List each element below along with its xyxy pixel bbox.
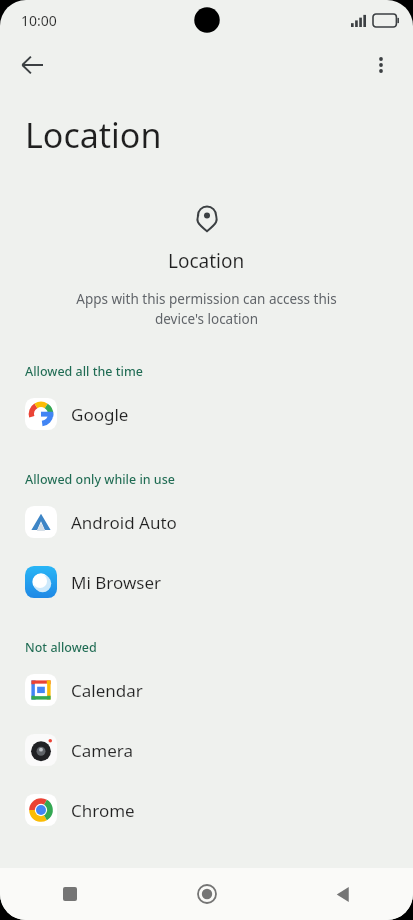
staticText: Location (25, 112, 162, 158)
button[interactable]: Chrome (0, 780, 413, 840)
staticText: Chrome (71, 799, 135, 822)
staticText: 10:00 (21, 11, 57, 30)
staticText: Google (71, 403, 129, 426)
staticText: Android Auto (71, 511, 177, 534)
button[interactable]: Mi Browser (0, 552, 413, 612)
button[interactable]: Google (0, 384, 413, 444)
button[interactable]: Android Auto (0, 492, 413, 552)
button[interactable]: Back (10, 43, 54, 87)
staticText: Apps with this permission can access thi… (76, 290, 337, 328)
button[interactable]: More options (359, 43, 403, 87)
staticText: Not allowed (25, 639, 97, 656)
button[interactable]: Calendar (0, 660, 413, 720)
button[interactable]: Home (185, 872, 229, 916)
staticText: Allowed only while in use (25, 471, 175, 488)
staticText: Calendar (71, 679, 143, 702)
button[interactable]: Camera (0, 720, 413, 780)
button[interactable]: Back (321, 872, 365, 916)
staticText: Location (168, 248, 245, 274)
staticText: Mi Browser (71, 571, 162, 594)
staticText: Allowed all the time (25, 363, 143, 380)
button[interactable]: Recent apps (48, 872, 92, 916)
staticText: Camera (71, 739, 133, 762)
